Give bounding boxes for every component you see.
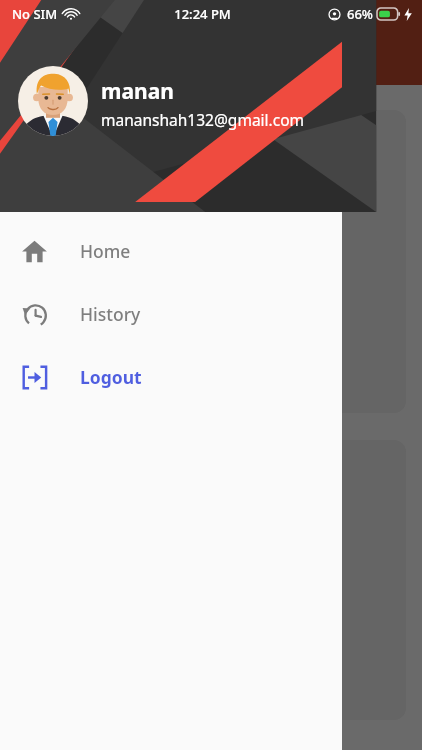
button[interactable]: History [0,282,342,345]
staticText: Logout [80,365,142,389]
button[interactable]: Logout [0,345,342,408]
button[interactable]: Home [0,219,342,282]
staticText: mananshah132@gmail.com [101,109,305,130]
staticText: 66% [347,5,373,23]
staticText: manan [101,77,174,106]
staticText: No SIM [12,5,58,23]
staticText: History [80,302,141,326]
staticText: Home [80,239,131,263]
staticText: 12:24 PM [174,5,231,23]
